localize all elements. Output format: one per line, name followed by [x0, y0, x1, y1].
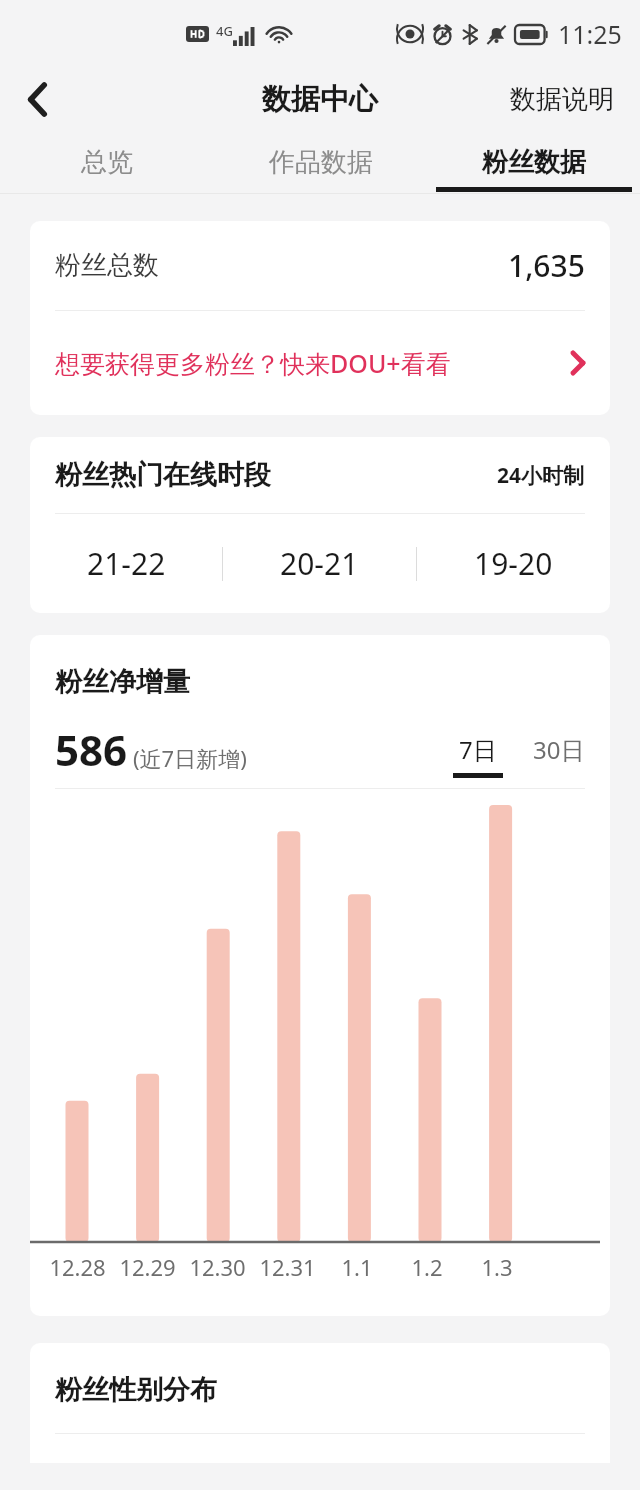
- staticText: 12.30: [189, 1252, 246, 1282]
- staticText: 总览: [81, 146, 133, 179]
- staticText: 30日: [533, 733, 585, 766]
- staticText: 数据说明: [510, 83, 614, 116]
- button[interactable]: 粉丝总数: [30, 221, 610, 310]
- staticText: 19-20: [474, 543, 553, 584]
- staticText: 1.2: [411, 1252, 443, 1282]
- button[interactable]: 19-20: [417, 514, 610, 613]
- staticText: 1,635: [508, 245, 585, 286]
- button[interactable]: 7日: [453, 733, 503, 778]
- button[interactable]: 数据说明: [504, 73, 620, 126]
- staticText: 粉丝总数: [55, 249, 159, 282]
- staticText: 586: [55, 721, 128, 778]
- staticText: 粉丝热门在线时段: [55, 458, 271, 492]
- staticText: 11:25: [558, 17, 622, 51]
- staticText: 24小时制: [497, 461, 585, 490]
- staticText: 20-21: [280, 543, 359, 584]
- staticText: 数据中心: [262, 81, 378, 118]
- staticText: 1.3: [481, 1252, 513, 1282]
- button[interactable]: 21-22: [30, 514, 222, 613]
- button[interactable]: Back: [6, 68, 68, 130]
- staticText: (近7日新增): [133, 743, 247, 773]
- staticText: 12.29: [119, 1252, 176, 1282]
- staticText: 想要获得更多粉丝？快来DOU+看看: [55, 346, 451, 380]
- button[interactable]: 想要获得更多粉丝？快来DOU+看看: [30, 311, 610, 415]
- button[interactable]: 30日: [533, 733, 585, 778]
- staticText: 1.1: [341, 1252, 373, 1282]
- staticText: 粉丝净增量: [55, 665, 190, 699]
- staticText: 21-22: [87, 543, 166, 584]
- staticText: 12.31: [259, 1252, 316, 1282]
- staticText: 7日: [459, 733, 497, 766]
- button[interactable]: 作品数据: [214, 130, 427, 194]
- button[interactable]: 20-21: [223, 514, 416, 613]
- staticText: 粉丝性别分布: [55, 1373, 217, 1407]
- button[interactable]: 总览: [0, 130, 214, 194]
- staticText: 作品数据: [269, 146, 373, 179]
- staticText: 粉丝数据: [482, 146, 586, 179]
- button[interactable]: 粉丝数据: [427, 130, 640, 194]
- staticText: 12.28: [49, 1252, 106, 1282]
- staticText: 4G: [216, 22, 233, 40]
